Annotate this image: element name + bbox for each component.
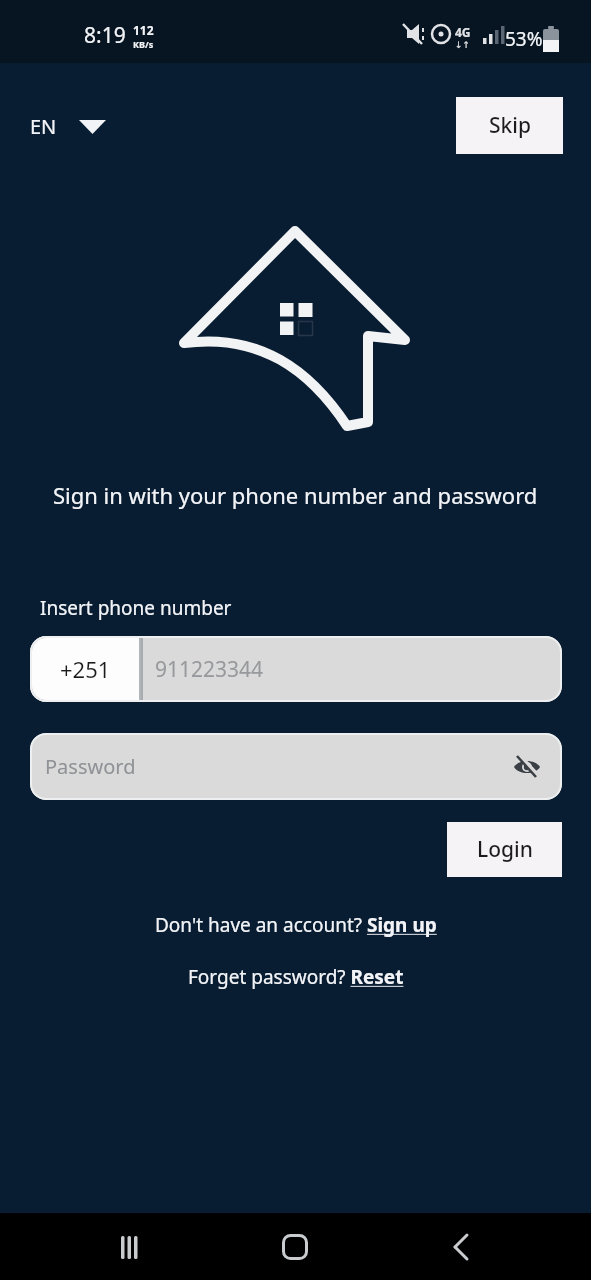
button[interactable] bbox=[103, 1221, 155, 1273]
staticText: ↓↑ bbox=[455, 40, 471, 50]
button[interactable]: Forget password? Reset bbox=[188, 964, 404, 990]
button[interactable]: Login bbox=[447, 822, 562, 877]
staticText: EN bbox=[30, 113, 57, 140]
staticText: +251 bbox=[60, 654, 111, 684]
button[interactable]: Skip bbox=[456, 97, 563, 154]
staticText: 4G bbox=[455, 24, 471, 40]
button[interactable]: +251 bbox=[30, 636, 562, 702]
staticText: Skip bbox=[489, 111, 531, 140]
button[interactable]: Password bbox=[30, 733, 562, 800]
staticText: 112 bbox=[133, 22, 154, 38]
staticText: 911223344 bbox=[155, 655, 264, 684]
staticText: KB/s bbox=[133, 38, 154, 50]
button[interactable] bbox=[269, 1221, 321, 1273]
staticText: 53% bbox=[505, 26, 543, 52]
staticText: Login bbox=[477, 835, 533, 864]
staticText: 8:19 bbox=[84, 21, 126, 50]
staticText: Insert phone number bbox=[40, 595, 232, 621]
button[interactable]: EN bbox=[20, 103, 116, 150]
button[interactable] bbox=[435, 1221, 487, 1273]
button[interactable]: Don't have an account? Sign up bbox=[155, 912, 437, 938]
staticText: Password bbox=[45, 753, 136, 780]
staticText: Sign in with your phone number and passw… bbox=[53, 480, 538, 510]
